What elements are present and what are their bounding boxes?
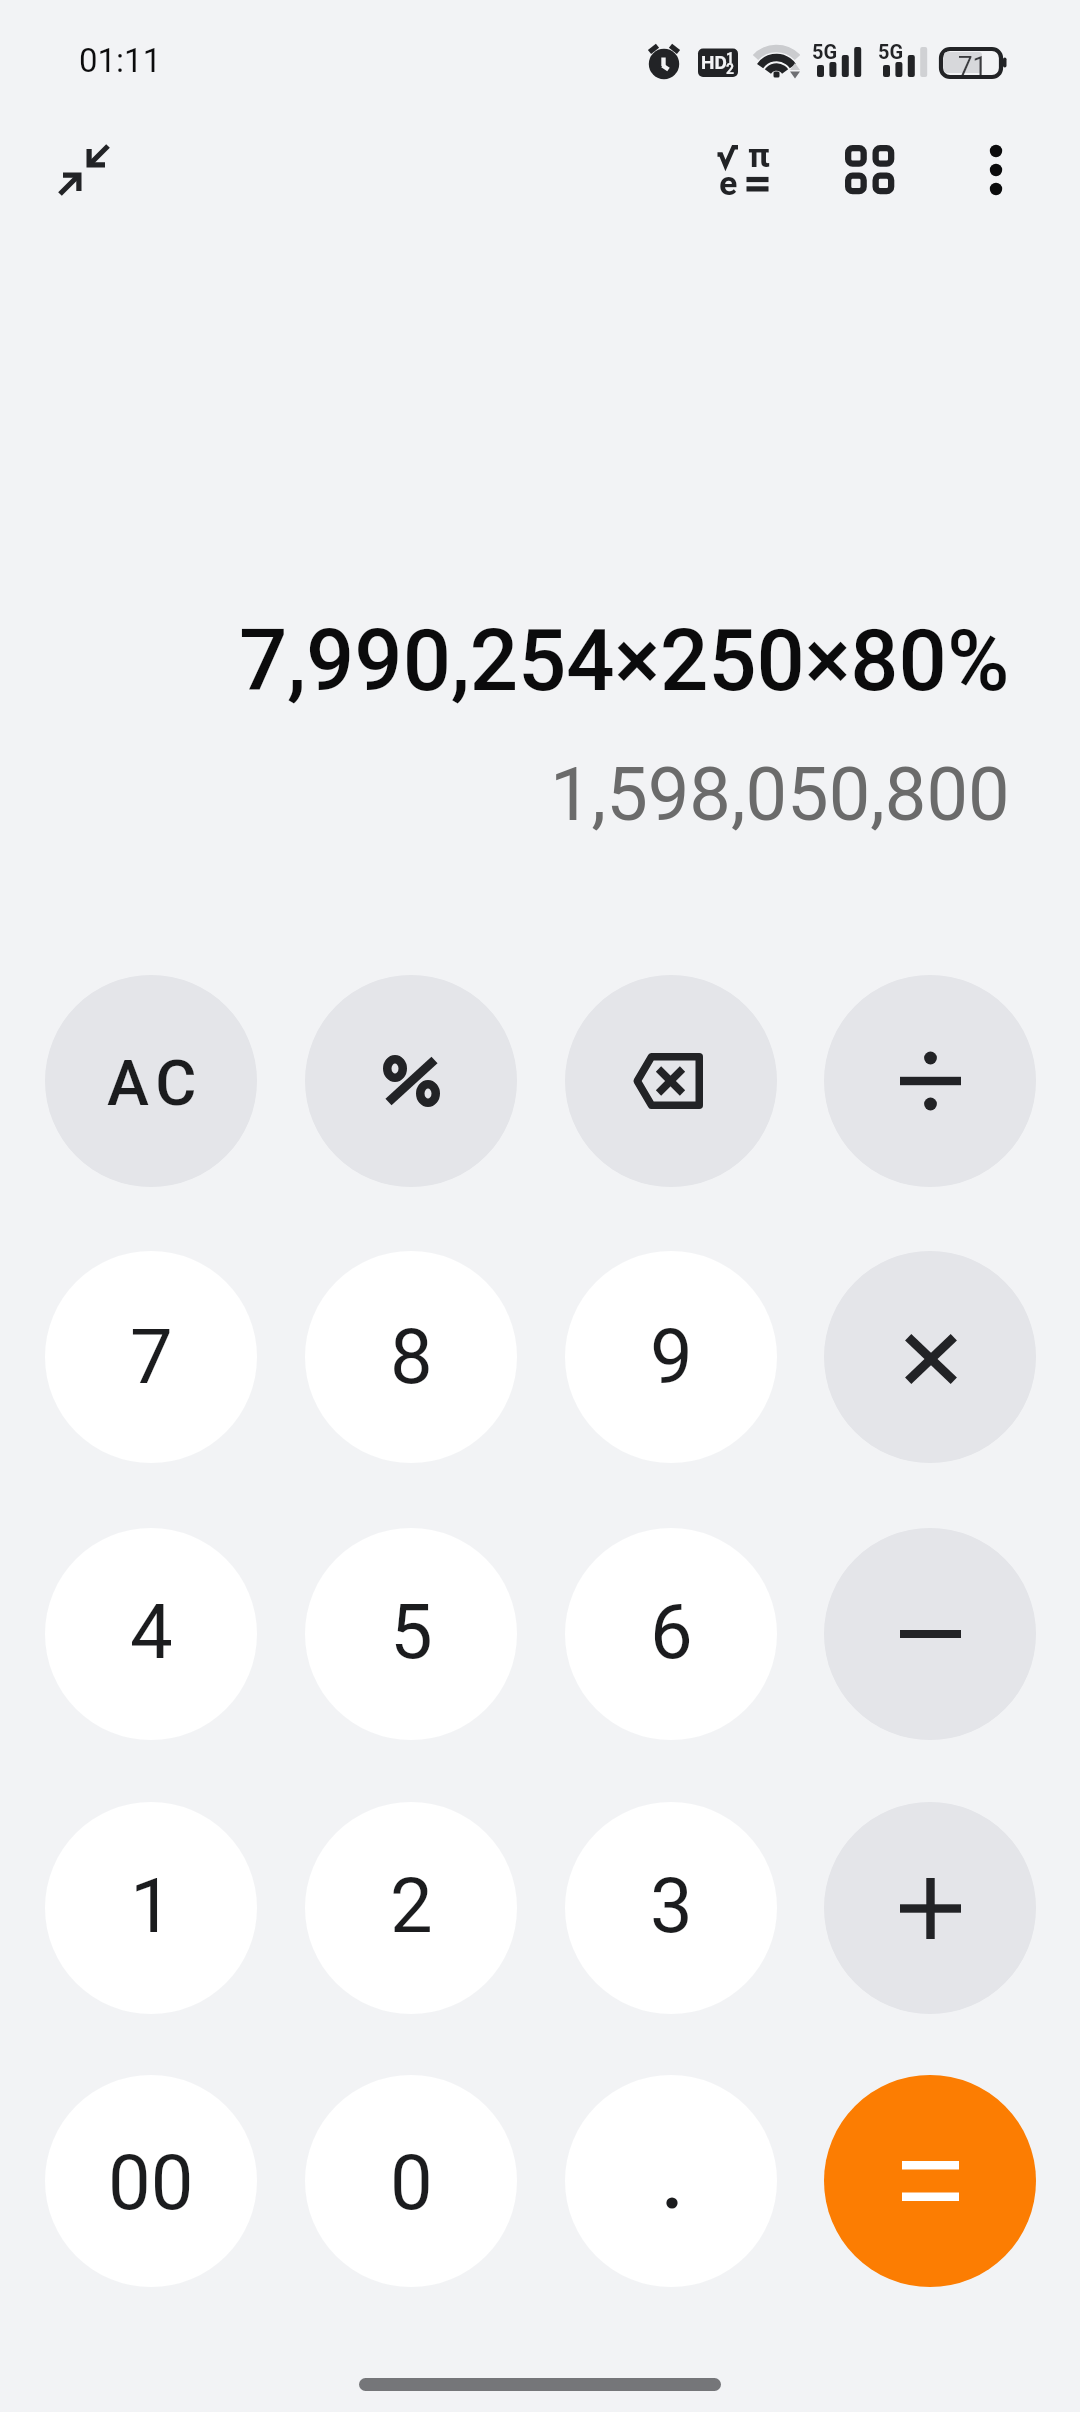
- button[interactable]: 9: [565, 1251, 777, 1463]
- button[interactable]: 0: [305, 2075, 517, 2287]
- button[interactable]: Add: [824, 1802, 1036, 2014]
- button[interactable]: 3: [565, 1802, 777, 2014]
- staticText: 00: [108, 2138, 194, 2227]
- button[interactable]: Backspace: [565, 975, 777, 1187]
- button[interactable]: 2: [305, 1802, 517, 2014]
- button[interactable]: Collapse: [36, 122, 132, 218]
- staticText: π: [748, 135, 770, 175]
- staticText: 7: [130, 1312, 173, 1401]
- button[interactable]: 6: [565, 1528, 777, 1740]
- button[interactable]: 4: [45, 1528, 257, 1740]
- button[interactable]: 7: [45, 1251, 257, 1463]
- button[interactable]: 5: [305, 1528, 517, 1740]
- staticText: 3: [650, 1861, 693, 1950]
- staticText: 0: [390, 2138, 433, 2227]
- staticText: e: [719, 163, 738, 203]
- staticText: 5G: [812, 40, 838, 63]
- staticText: 4: [130, 1587, 173, 1676]
- staticText: 9: [650, 1312, 693, 1401]
- button[interactable]: 00: [45, 2075, 257, 2287]
- staticText: 5: [390, 1587, 433, 1676]
- button[interactable]: [305, 975, 517, 1187]
- button[interactable]: [565, 2075, 777, 2287]
- button[interactable]: Calculator modes: [822, 122, 918, 218]
- button[interactable]: 8: [305, 1251, 517, 1463]
- button[interactable]: 1: [45, 1802, 257, 2014]
- staticText: 1: [130, 1861, 173, 1950]
- button[interactable]: Subtract: [824, 1528, 1036, 1740]
- button[interactable]: More options: [948, 122, 1044, 218]
- staticText: 01:11: [79, 41, 162, 80]
- staticText: AC: [107, 1047, 204, 1121]
- staticText: 1: [726, 50, 735, 66]
- button[interactable]: Scientific calculator: [696, 122, 792, 218]
- staticText: 6: [650, 1587, 693, 1676]
- staticText: HD: [701, 51, 727, 73]
- staticText: 5G: [878, 40, 904, 63]
- button[interactable]: Equals: [824, 2075, 1036, 2287]
- staticText: 2: [726, 61, 735, 77]
- staticText: 2: [390, 1861, 433, 1950]
- button[interactable]: AC: [45, 975, 257, 1187]
- button[interactable]: Divide: [824, 975, 1036, 1187]
- staticText: 71: [958, 51, 988, 81]
- staticText: 1,598,050,800: [550, 751, 1010, 838]
- button[interactable]: Multiply: [824, 1251, 1036, 1463]
- staticText: 7,990,254×250×80%: [239, 611, 1010, 711]
- staticText: 8: [390, 1312, 433, 1401]
